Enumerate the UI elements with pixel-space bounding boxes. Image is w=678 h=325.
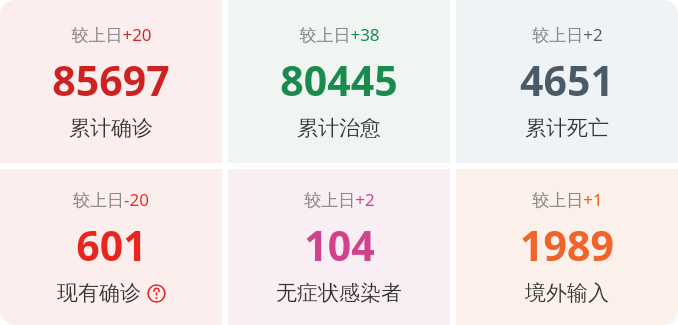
staticText: 4651: [520, 52, 614, 108]
staticText: 较上日+20: [71, 23, 152, 46]
staticText: 85697: [52, 52, 170, 108]
staticText: 104: [304, 217, 375, 273]
staticText: 较上日+2: [304, 188, 375, 211]
staticText: 1989: [520, 217, 614, 273]
button[interactable]: 较上日+1: [456, 169, 678, 325]
staticText: 现有确诊: [57, 280, 141, 306]
staticText: 较上日+2: [532, 23, 603, 46]
staticText: 累计确诊: [69, 115, 153, 141]
staticText: 80445: [280, 52, 398, 108]
staticText: 累计死亡: [525, 115, 609, 141]
staticText: 较上日+38: [299, 23, 380, 46]
staticText: 较上日+1: [532, 188, 603, 211]
staticText: 无症状感染者: [276, 280, 402, 306]
button[interactable]: 较上日-20: [0, 169, 222, 325]
staticText: 601: [76, 217, 147, 273]
button[interactable]: 较上日+2: [228, 169, 450, 325]
button[interactable]: 较上日+38: [228, 0, 450, 163]
staticText: 境外输入: [525, 280, 609, 306]
staticText: 累计治愈: [297, 115, 381, 141]
other: 说明: [147, 284, 166, 303]
button[interactable]: 较上日+20: [0, 0, 222, 163]
button[interactable]: 较上日+2: [456, 0, 678, 163]
staticText: 较上日-20: [73, 188, 149, 211]
